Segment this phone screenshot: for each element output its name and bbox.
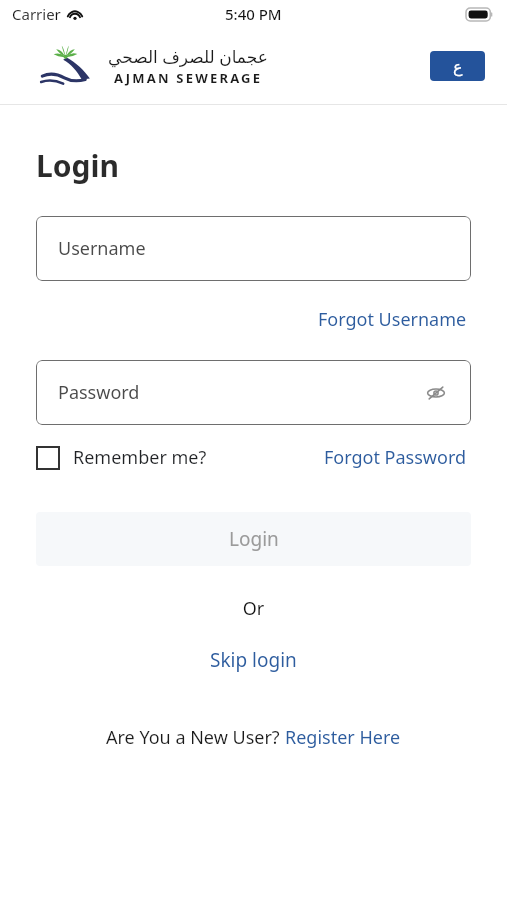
staticText: Remember me? — [73, 445, 207, 470]
staticText: Register Here — [285, 725, 401, 750]
staticText: Password — [58, 380, 140, 405]
staticText: Are You a New User? — [106, 725, 285, 750]
button[interactable]: Register Here — [285, 725, 401, 750]
button[interactable]: Forgot Username — [314, 303, 471, 336]
staticText: ع — [453, 57, 463, 76]
button[interactable]: Forgot Password — [320, 441, 471, 474]
staticText: عجمان للصرف الصحي — [108, 45, 268, 68]
staticText: Or — [0, 596, 507, 621]
staticText: Forgot Password — [324, 445, 467, 470]
staticText: 5:40 PM — [225, 4, 282, 24]
staticText: Skip login — [210, 647, 297, 673]
staticText: Username — [58, 236, 146, 261]
button[interactable]: Remember me? — [36, 445, 207, 470]
staticText: AJMAN SEWERAGE — [114, 69, 263, 87]
button[interactable]: Switch language to Arabic — [430, 51, 485, 81]
button[interactable]: Login — [36, 512, 471, 566]
button[interactable]: Skip login — [200, 643, 307, 677]
button[interactable]: Password — [36, 360, 471, 425]
staticText: Login — [229, 526, 279, 552]
staticText: Carrier — [12, 4, 61, 24]
staticText: Login — [36, 145, 119, 186]
button[interactable]: Username — [36, 216, 471, 281]
button[interactable]: Show password — [423, 380, 449, 406]
staticText: Forgot Username — [318, 307, 467, 332]
